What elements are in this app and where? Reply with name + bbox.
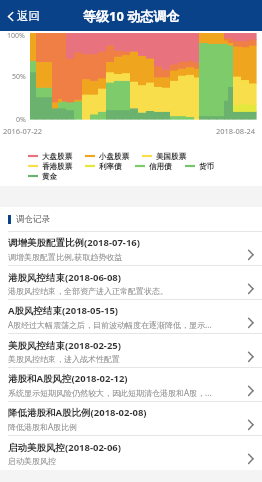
staticText: 50% [12, 72, 26, 82]
staticText: 美股风控结束，进入战术性配置 [8, 354, 120, 364]
staticText: 启动美股风控(2018-02-06) [8, 441, 121, 454]
staticText: 2018-08-24 [216, 126, 256, 136]
staticText: 港股风控结束，全部资产进入正常配置状态。 [8, 286, 168, 296]
staticText: 返回 [17, 9, 40, 23]
staticText: 小盘股票 [99, 152, 129, 161]
staticText: 降低港股和A股比例 [8, 421, 78, 432]
button[interactable]: A股风控结束(2018-05-15) [0, 300, 262, 334]
staticText: 港股和A股风控(2018-02-12) [8, 372, 128, 385]
button[interactable]: 港股风控结束(2018-06-08) [0, 266, 262, 300]
staticText: 调增美股配置比例,获取趋势收益 [8, 251, 123, 262]
staticText: 调增美股配置比例(2018-07-16) [8, 236, 140, 249]
staticText: 2016-07-22 [3, 126, 43, 136]
staticText: A股风控结束(2018-05-15) [8, 304, 119, 317]
staticText: 美国股票 [156, 152, 186, 161]
staticText: 美股风控结束(2018-02-25) [8, 339, 121, 352]
staticText: 大盘股票 [42, 152, 72, 161]
staticText: 港股风控结束(2018-06-08) [8, 271, 121, 284]
staticText: 等级10 动态调仓 [83, 7, 180, 25]
staticText: 货币 [199, 162, 214, 171]
button[interactable]: 降低港股和A股比例(2018-02-08) [0, 402, 262, 436]
staticText: 信用债 [149, 162, 172, 171]
staticText: 系统显示短期风险仍然较大，因此短期清仓港股和A股，... [8, 387, 212, 398]
staticText: 100% [7, 31, 25, 41]
staticText: 降低港股和A股比例(2018-02-08) [8, 406, 147, 419]
staticText: 利率债 [99, 162, 122, 171]
staticText: 启动美股风控 [8, 456, 56, 466]
button[interactable]: 启动美股风控(2018-02-06) [0, 436, 262, 470]
button[interactable]: 返回 [0, 5, 48, 27]
button[interactable]: 港股和A股风控(2018-02-12) [0, 368, 262, 402]
button[interactable]: 美股风控结束(2018-02-25) [0, 334, 262, 368]
staticText: A股经过大幅震荡之后，目前波动幅度在逐渐降低，显示... [8, 319, 212, 330]
staticText: 香港股票 [42, 162, 72, 171]
button[interactable]: 调增美股配置比例(2018-07-16) [0, 232, 262, 266]
staticText: 0% [16, 115, 26, 125]
staticText: 调仓记录 [16, 214, 50, 225]
staticText: 黄金 [42, 172, 57, 181]
